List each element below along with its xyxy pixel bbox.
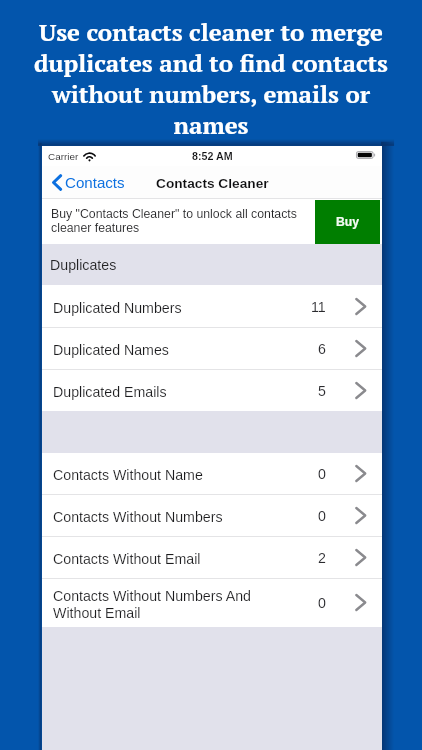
button[interactable]: Duplicated Numbers [42, 285, 382, 327]
button[interactable]: Buy [315, 200, 380, 244]
staticText: Buy [336, 215, 360, 229]
button[interactable]: Contacts Without Name [42, 453, 382, 494]
button[interactable]: Contacts Without Email [42, 536, 382, 578]
button[interactable]: Duplicated Names [42, 327, 382, 369]
staticText: Duplicated Emails [53, 384, 298, 400]
staticText: Duplicated Names [53, 342, 298, 358]
button[interactable]: Duplicated Emails [42, 369, 382, 411]
staticText: Duplicates [50, 257, 117, 273]
staticText: Duplicated Numbers [53, 300, 298, 316]
staticText: Use contacts cleaner to merge duplicates… [26, 16, 396, 141]
button[interactable]: Contacts Without Numbers And Without Ema… [42, 578, 382, 627]
staticText: Contacts [65, 174, 125, 191]
staticText: 5 [318, 383, 326, 399]
staticText: Contacts Without Numbers And Without Ema… [53, 588, 298, 621]
staticText: 11 [311, 299, 326, 315]
staticText: 0 [318, 508, 326, 524]
staticText: 6 [318, 341, 326, 357]
staticText: 0 [318, 595, 326, 611]
staticText: 8:52 AM [192, 150, 233, 162]
staticText: Contacts Without Email [53, 551, 298, 567]
staticText: Contacts Cleaner [156, 176, 269, 191]
button[interactable]: Contacts Without Numbers [42, 494, 382, 536]
staticText: Contacts Without Name [53, 467, 298, 483]
staticText: Carrier [48, 151, 79, 162]
staticText: Buy "Contacts Cleaner" to unlock all con… [51, 207, 303, 235]
staticText: 0 [318, 466, 326, 482]
staticText: 2 [318, 550, 326, 566]
button[interactable]: Contacts [42, 174, 131, 191]
staticText: Contacts Without Numbers [53, 509, 298, 525]
